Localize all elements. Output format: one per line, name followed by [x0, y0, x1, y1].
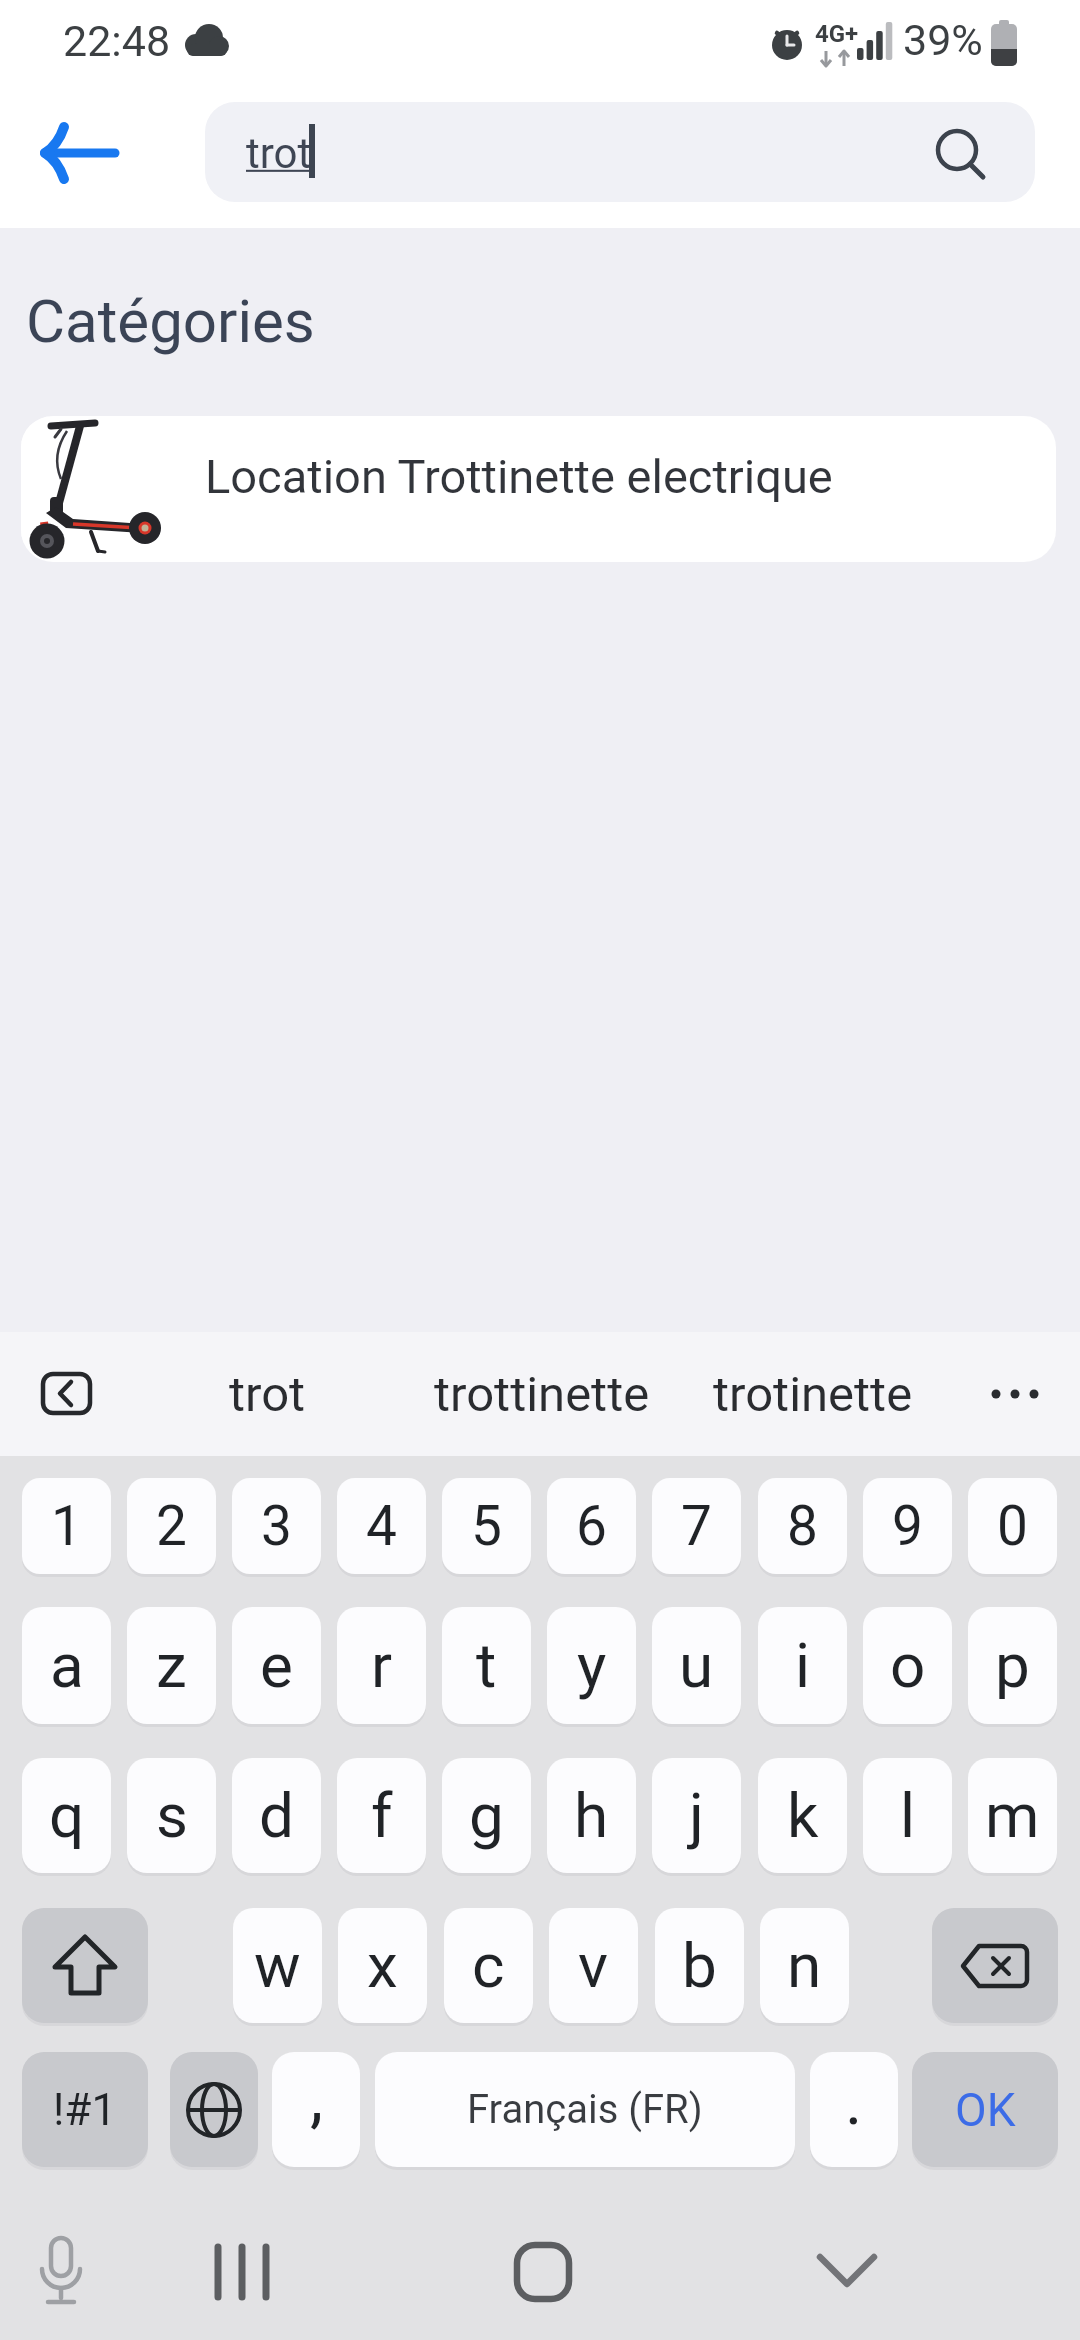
staticText: v [578, 1929, 609, 2002]
button[interactable] [495, 2224, 591, 2320]
button[interactable]: 2 [127, 1478, 216, 1574]
button[interactable] [170, 2052, 258, 2167]
button[interactable]: n [760, 1908, 849, 2023]
staticText: p [995, 1629, 1030, 1702]
staticText: f [371, 1779, 393, 1852]
staticText: 5 [471, 1494, 502, 1558]
button[interactable]: y [547, 1607, 636, 1724]
button[interactable]: p [968, 1607, 1057, 1724]
staticText: 8 [787, 1494, 818, 1558]
button[interactable]: , [272, 2052, 360, 2167]
button[interactable]: trottinette [432, 1352, 652, 1436]
staticText: Français (FR) [467, 2086, 703, 2133]
button[interactable] [28, 2232, 94, 2318]
staticText: a [50, 1629, 84, 1702]
button[interactable]: t [442, 1607, 531, 1724]
staticText: n [787, 1929, 822, 2002]
staticText: 39% [903, 15, 983, 65]
staticText: c [472, 1929, 505, 2002]
button[interactable]: r [337, 1607, 426, 1724]
button[interactable]: o [863, 1607, 952, 1724]
button[interactable]: g [442, 1758, 531, 1873]
button[interactable]: 8 [758, 1478, 847, 1574]
button[interactable] [30, 1360, 102, 1428]
button[interactable] [932, 1908, 1058, 2023]
button[interactable]: x [338, 1908, 427, 2023]
staticText: trottinette [434, 1366, 650, 1423]
button[interactable]: i [758, 1607, 847, 1724]
button[interactable]: 1 [22, 1478, 111, 1574]
button[interactable]: j [652, 1758, 741, 1873]
staticText: h [574, 1779, 609, 1852]
staticText: g [469, 1779, 504, 1852]
staticText: Location Trottinette electrique [205, 449, 833, 504]
button[interactable]: !#1 [22, 2052, 148, 2167]
staticText: 22:48 [63, 16, 171, 66]
button[interactable]: h [547, 1758, 636, 1873]
staticText: w [254, 1929, 301, 2002]
button[interactable]: 9 [863, 1478, 952, 1574]
button[interactable]: s [127, 1758, 216, 1873]
staticText: r [371, 1629, 393, 1702]
button[interactable] [966, 1360, 1062, 1428]
button[interactable]: Location Trottinette electrique [21, 416, 1056, 562]
staticText: b [682, 1929, 717, 2002]
staticText: 0 [997, 1494, 1028, 1558]
staticText: . [845, 2063, 863, 2140]
staticText: 7 [681, 1494, 712, 1558]
staticText: j [689, 1779, 704, 1852]
staticText: trotinette [713, 1366, 913, 1423]
staticText: m [985, 1779, 1040, 1852]
staticText: x [367, 1929, 398, 2002]
button[interactable]: b [655, 1908, 744, 2023]
button[interactable]: 0 [968, 1478, 1057, 1574]
button[interactable]: trot [157, 1352, 377, 1436]
button[interactable] [196, 2226, 292, 2322]
staticText: i [795, 1629, 811, 1702]
button[interactable]: m [968, 1758, 1057, 1873]
staticText: trot [229, 1366, 306, 1423]
staticText: d [259, 1779, 294, 1852]
staticText: k [787, 1779, 819, 1852]
button[interactable]: d [232, 1758, 321, 1873]
button[interactable]: OK [912, 2052, 1058, 2167]
button[interactable]: 6 [547, 1478, 636, 1574]
button[interactable]: c [444, 1908, 533, 2023]
staticText: 4 [366, 1494, 397, 1558]
staticText: s [156, 1779, 188, 1852]
button[interactable]: trotinette [703, 1352, 923, 1436]
button[interactable]: l [863, 1758, 952, 1873]
button[interactable]: z [127, 1607, 216, 1724]
staticText: q [49, 1779, 85, 1852]
staticText: o [890, 1629, 926, 1702]
button[interactable]: q [22, 1758, 111, 1873]
staticText: OK [955, 2083, 1016, 2137]
button[interactable]: k [758, 1758, 847, 1873]
button[interactable]: w [233, 1908, 322, 2023]
button[interactable]: 5 [442, 1478, 531, 1574]
button[interactable]: e [232, 1607, 321, 1724]
staticText: 4G+ [815, 20, 859, 48]
button[interactable]: f [337, 1758, 426, 1873]
staticText: y [577, 1629, 607, 1702]
button[interactable]: Français (FR) [375, 2052, 795, 2167]
button[interactable]: u [652, 1607, 741, 1724]
button[interactable]: v [549, 1908, 638, 2023]
staticText: !#1 [53, 2084, 117, 2136]
staticText: 9 [892, 1494, 923, 1558]
staticText: trot [246, 129, 312, 178]
staticText: e [260, 1629, 293, 1702]
staticText: z [156, 1629, 187, 1702]
button[interactable] [799, 2224, 895, 2320]
staticText: 1 [51, 1494, 82, 1558]
button[interactable]: trot [205, 102, 1035, 202]
button[interactable]: 4 [337, 1478, 426, 1574]
button[interactable] [28, 116, 132, 192]
button[interactable]: a [22, 1607, 111, 1724]
button[interactable]: . [810, 2052, 898, 2167]
staticText: 2 [156, 1494, 187, 1558]
button[interactable]: 7 [652, 1478, 741, 1574]
button[interactable]: 3 [232, 1478, 321, 1574]
staticText: 3 [261, 1494, 292, 1558]
button[interactable] [22, 1908, 148, 2023]
